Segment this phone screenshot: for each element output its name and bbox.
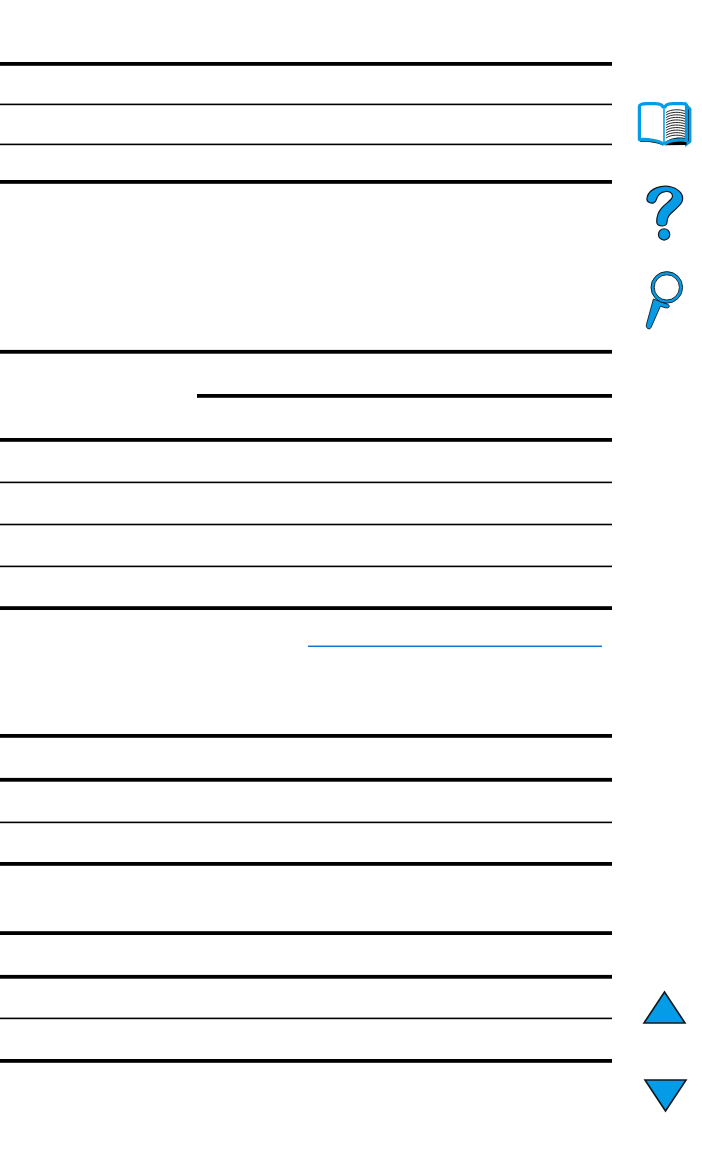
button[interactable]: Previous page	[644, 992, 685, 1023]
button[interactable]: Help	[645, 184, 684, 240]
button[interactable]: Table of contents	[637, 101, 693, 146]
button[interactable]: Search	[644, 268, 686, 330]
button[interactable]: Next page	[645, 1080, 686, 1111]
